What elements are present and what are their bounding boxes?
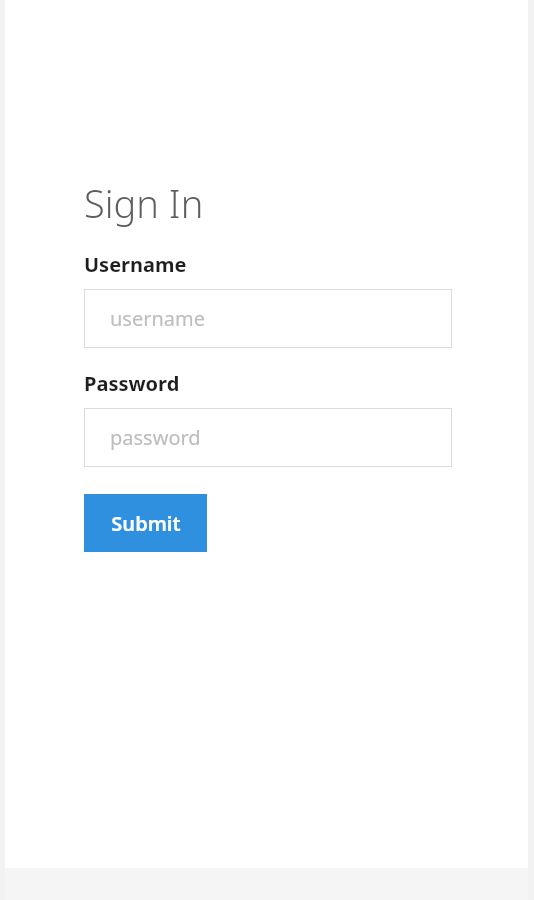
staticText: Submit [111, 510, 181, 537]
staticText: username [110, 305, 206, 332]
button[interactable]: password [84, 408, 452, 467]
staticText: password [110, 424, 201, 451]
button[interactable]: username [84, 289, 452, 348]
button[interactable]: Submit [84, 494, 207, 552]
staticText: Username [84, 251, 187, 278]
staticText: Password [84, 370, 180, 397]
staticText: Sign In [84, 177, 204, 229]
